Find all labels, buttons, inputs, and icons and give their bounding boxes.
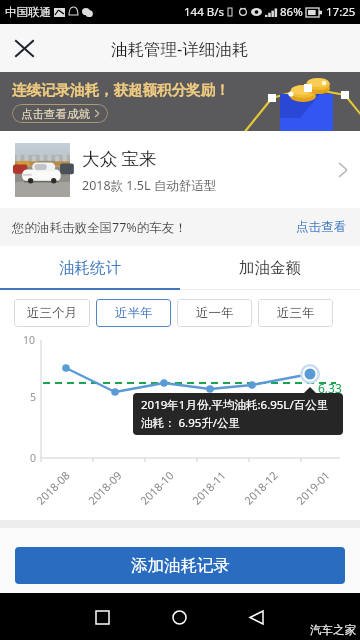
- button[interactable]: Close: [0, 24, 46, 72]
- staticText: 17:25: [326, 4, 356, 20]
- staticText: 144 B/s: [184, 4, 224, 20]
- staticText: 汽车之家: [310, 623, 356, 637]
- staticText: 2019-01: [293, 467, 333, 508]
- staticText: 2018-10: [137, 467, 177, 508]
- button[interactable]: 油耗统计: [0, 246, 180, 290]
- staticText: 0: [30, 451, 37, 465]
- staticText: 10: [23, 333, 36, 347]
- button[interactable]: 您的油耗击败全国77%的车友！: [0, 208, 360, 246]
- button[interactable]: 加油金额: [180, 246, 360, 290]
- button[interactable]: Home: [156, 594, 202, 640]
- button[interactable]: 连续记录油耗，获超额积分奖励！: [0, 72, 360, 131]
- staticText: 2018-09: [85, 467, 125, 508]
- staticText: 中国联通: [5, 5, 51, 19]
- staticText: 加油金额: [239, 258, 301, 278]
- button[interactable]: 近半年: [96, 299, 171, 327]
- button[interactable]: 近三个月: [14, 299, 90, 327]
- staticText: 近一年: [196, 305, 234, 321]
- staticText: 近三年: [277, 305, 315, 321]
- staticText: 点击查看: [296, 219, 346, 235]
- staticText: 2018款 1.5L 自动舒适型: [82, 177, 217, 194]
- staticText: 6.33: [318, 380, 342, 396]
- button[interactable]: 添加油耗记录: [15, 547, 345, 584]
- staticText: 2018-11: [189, 467, 229, 508]
- button[interactable]: Recents: [79, 594, 125, 640]
- staticText: 86%: [280, 4, 303, 20]
- staticText: 点击查看成就: [21, 107, 90, 121]
- button[interactable]: 大众 宝来: [0, 131, 360, 208]
- staticText: 添加油耗记录: [131, 555, 230, 576]
- staticText: 油耗管理-详细油耗: [111, 37, 249, 60]
- staticText: 近三个月: [27, 305, 77, 321]
- staticText: 近半年: [115, 305, 153, 321]
- button[interactable]: 近三年: [258, 299, 333, 327]
- staticText: 连续记录油耗，获超额积分奖励！: [12, 81, 230, 99]
- staticText: 5: [30, 390, 37, 404]
- staticText: 您的油耗击败全国77%的车友！: [12, 219, 187, 236]
- staticText: 油耗统计: [59, 258, 121, 278]
- staticText: 2018-12: [241, 467, 281, 508]
- staticText: 2019年1月份,平均油耗:6.95L/百公里: [141, 397, 329, 413]
- button[interactable]: Back: [233, 594, 279, 640]
- button[interactable]: 点击查看成就: [12, 104, 108, 123]
- staticText: 油耗： 6.95升/公里: [141, 415, 241, 431]
- staticText: 大众 宝来: [82, 146, 157, 170]
- staticText: 2018-08: [33, 467, 73, 508]
- button[interactable]: 近一年: [177, 299, 252, 327]
